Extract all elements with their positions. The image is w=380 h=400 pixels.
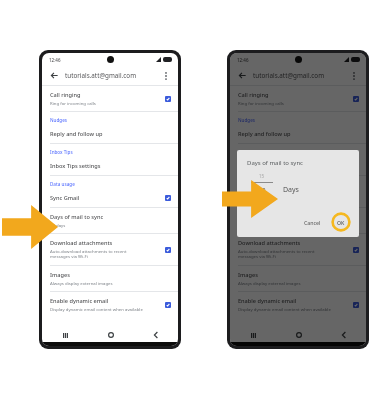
staticText: 12:46	[49, 57, 61, 63]
staticText: Display dynamic email content when avail…	[238, 306, 331, 312]
staticText: tutorials.att@gmail.com	[65, 71, 137, 80]
button[interactable]: Call ringing	[230, 86, 366, 111]
button[interactable]: 30	[256, 186, 269, 194]
staticText: Data usage	[238, 181, 263, 187]
staticText: Nudges	[50, 117, 68, 123]
staticText: Images	[50, 271, 70, 279]
button[interactable]: Download attachments	[230, 234, 366, 265]
button[interactable]: Enabled	[165, 96, 171, 102]
button[interactable]: Enable dynamic email	[230, 292, 366, 317]
button[interactable]: Back	[236, 69, 249, 82]
button[interactable]: Inbox Tips settings	[230, 157, 366, 175]
staticText: Auto-download attachments to recent mess…	[50, 248, 127, 260]
staticText: Enable dynamic email	[50, 297, 109, 305]
button[interactable]: More options	[347, 69, 360, 82]
button[interactable]: Sync Gmail	[230, 189, 366, 207]
button[interactable]: Enabled	[165, 247, 171, 253]
staticText: Days	[283, 185, 299, 195]
staticText: Always display external images	[238, 280, 301, 286]
button[interactable]: Inbox Tips settings	[42, 157, 178, 175]
button[interactable]: Cancel	[300, 217, 325, 228]
button[interactable]: More options	[159, 69, 172, 82]
staticText: tutorials.att@gmail.com	[253, 71, 325, 80]
button[interactable]: Days of mail to sync	[42, 208, 178, 233]
staticText: Call ringing	[238, 91, 269, 99]
button[interactable]: Recents	[42, 333, 88, 338]
staticText: OK	[337, 219, 345, 226]
staticText: Enable dynamic email	[238, 297, 297, 305]
button[interactable]: Enabled	[353, 247, 359, 253]
staticText: 15	[259, 173, 265, 179]
button[interactable]: Sync Gmail	[42, 189, 178, 207]
staticText: Reply and follow up	[50, 130, 103, 138]
button[interactable]: Back	[133, 332, 178, 338]
button[interactable]: Recents	[230, 333, 276, 338]
button[interactable]: Reply and follow up	[42, 125, 178, 143]
button[interactable]: Call ringing	[42, 86, 178, 111]
button[interactable]: Enable dynamic email	[42, 292, 178, 317]
staticText: Download attachments	[238, 239, 301, 247]
button[interactable]: Back	[48, 69, 61, 82]
button[interactable]: Back	[321, 332, 366, 338]
button[interactable]: OK	[334, 217, 348, 228]
button[interactable]: Home	[88, 332, 133, 338]
staticText: Inbox Tips	[238, 149, 261, 155]
button[interactable]: Enabled	[165, 195, 171, 201]
staticText: 30	[259, 186, 266, 194]
button[interactable]: Home	[276, 332, 321, 338]
staticText: Data usage	[50, 181, 75, 187]
button[interactable]: Download attachments	[42, 234, 178, 265]
button[interactable]: Images	[42, 266, 178, 291]
staticText: Ring for incoming calls	[50, 100, 96, 106]
button[interactable]: Images	[230, 266, 366, 291]
staticText: Download attachments	[50, 239, 113, 247]
staticText: Auto-download attachments to recent mess…	[238, 248, 315, 260]
staticText: 30 days	[50, 222, 66, 228]
staticText: Images	[238, 271, 258, 279]
staticText: Call ringing	[50, 91, 81, 99]
staticText: Display dynamic email content when avail…	[50, 306, 143, 312]
button[interactable]: Enabled	[165, 302, 171, 308]
staticText: Nudges	[238, 117, 256, 123]
staticText: Sync Gmail	[50, 194, 80, 202]
staticText: Inbox Tips settings	[50, 162, 101, 170]
button[interactable]: Reply and follow up	[230, 125, 366, 143]
staticText: 12:46	[237, 57, 249, 63]
staticText: Inbox Tips settings	[238, 162, 289, 170]
staticText: Cancel	[304, 219, 321, 226]
button[interactable]: Enabled	[353, 302, 359, 308]
staticText: Days of mail to sync	[247, 159, 304, 167]
button[interactable]: Enabled	[353, 96, 359, 102]
staticText: Reply and follow up	[238, 130, 291, 138]
staticText: Always display external images	[50, 280, 113, 286]
staticText: Days of mail to sync	[50, 213, 104, 221]
staticText: Days of mail to sync	[238, 213, 292, 221]
button[interactable]: Days of mail to sync	[230, 208, 366, 233]
staticText: Inbox Tips	[50, 149, 73, 155]
staticText: Ring for incoming calls	[238, 100, 284, 106]
